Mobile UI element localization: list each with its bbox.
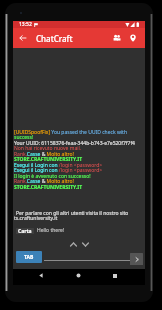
staticText: Your UUID: 61158376-feaa-344b-b743-e7e52… xyxy=(14,140,135,147)
staticText: 13:52 xyxy=(19,21,32,28)
staticText: Non hai ricevuto nuove mail. xyxy=(14,145,82,152)
button[interactable]: Scroll up xyxy=(68,239,79,250)
staticText: STORE.CRAFTUNIVERSITY.IT xyxy=(14,156,83,163)
staticText: TAB xyxy=(24,254,34,261)
staticText: [UUIDSpoofFix] You passed the UUID check… xyxy=(14,129,127,136)
button[interactable]: Location xyxy=(125,28,141,48)
staticText: success! xyxy=(14,134,34,141)
button[interactable]: Send xyxy=(130,253,143,265)
staticText: Rank,Casse & Molto altro! xyxy=(14,178,74,185)
staticText: Per parlare con gli altri utenti visita … xyxy=(16,210,129,217)
staticText: ChatCraft xyxy=(36,33,73,44)
staticText: Hello there! xyxy=(37,227,65,234)
button[interactable]: Carta xyxy=(16,228,34,234)
staticText: Carta xyxy=(18,228,32,234)
staticText: Esegui il Login con /login <password> xyxy=(14,162,103,169)
button[interactable]: Scroll down xyxy=(80,239,91,250)
staticText: Rank,Casse & Molto altro! xyxy=(14,151,74,158)
button[interactable]: TAB xyxy=(16,251,42,263)
button[interactable]: Recents xyxy=(106,269,124,282)
button[interactable]: Back xyxy=(13,28,32,48)
staticText: Esegui il Login con /login <password> xyxy=(14,167,103,174)
staticText: STORE.CRAFTUNIVERSITY.IT xyxy=(14,184,83,191)
staticText: ts.craftuniversity.it xyxy=(14,215,58,222)
button[interactable]: Back xyxy=(32,269,50,282)
button[interactable]: Home xyxy=(69,269,87,282)
staticText: Il login è avvenuto con successo! xyxy=(14,173,91,180)
button[interactable]: Players xyxy=(109,28,125,48)
